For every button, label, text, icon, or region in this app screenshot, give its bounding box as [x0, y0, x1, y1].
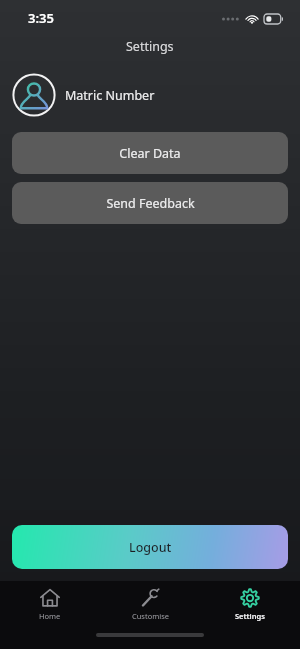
button[interactable]: Send Feedback [12, 182, 288, 224]
button[interactable]: Customise [100, 581, 200, 627]
button[interactable]: Clear Data [12, 132, 288, 174]
button[interactable]: Settings [200, 581, 300, 627]
staticText: Matric Number [65, 87, 155, 104]
staticText: Send Feedback [106, 195, 195, 212]
staticText: Logout [129, 539, 172, 556]
button[interactable]: Logout [12, 525, 288, 569]
staticText: 3:35 [28, 9, 54, 27]
staticText: Settings [126, 38, 174, 55]
staticText: Settings [235, 611, 265, 621]
button[interactable]: Home [0, 581, 100, 627]
staticText: Customise [132, 611, 169, 621]
staticText: Clear Data [119, 145, 181, 162]
staticText: Home [39, 611, 61, 621]
button[interactable]: Matric Number [0, 72, 300, 118]
